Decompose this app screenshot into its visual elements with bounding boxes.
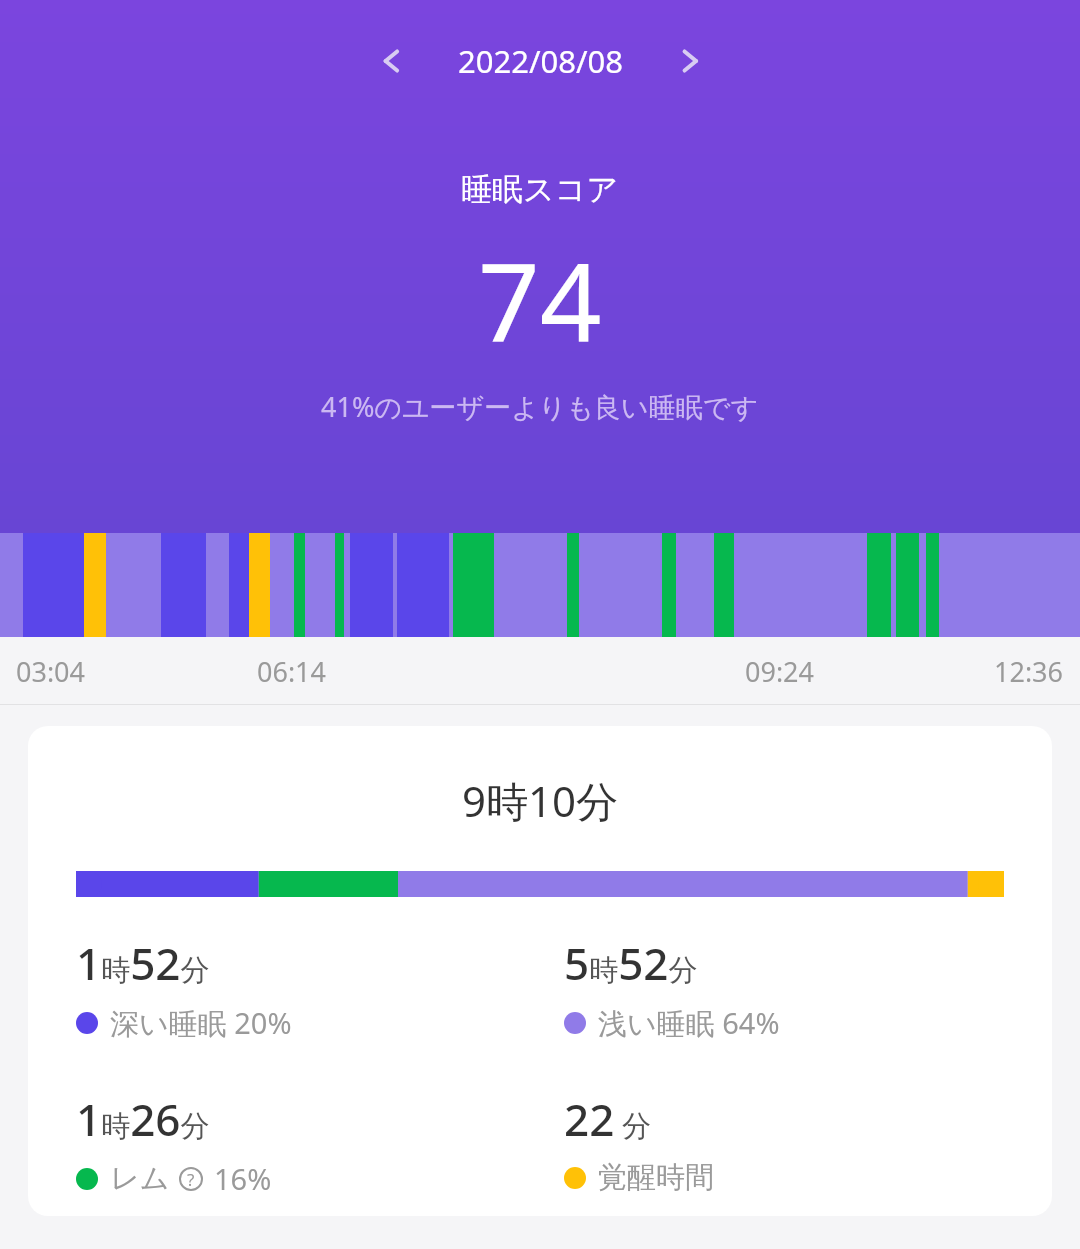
staticText: 覚醒時間 bbox=[598, 1159, 714, 1196]
staticText: 09:24 bbox=[745, 653, 815, 690]
staticText: 深い睡眠 20% bbox=[110, 1003, 292, 1043]
staticText: 睡眠スコア bbox=[461, 170, 619, 209]
staticText: ? bbox=[187, 1168, 195, 1191]
staticText: 1時52分 bbox=[76, 933, 210, 993]
staticText: 22 分 bbox=[564, 1089, 651, 1149]
button[interactable]: 1時26分 bbox=[76, 1089, 540, 1198]
button[interactable]: 5時52分 bbox=[564, 933, 1052, 1043]
button[interactable]: 2022/08/08 bbox=[450, 36, 631, 86]
staticText: 12:36 bbox=[994, 653, 1064, 690]
staticText: 浅い睡眠 64% bbox=[598, 1003, 780, 1043]
button[interactable]: 1時52分 bbox=[76, 933, 540, 1043]
button[interactable]: Next day bbox=[663, 34, 717, 88]
staticText: 5時52分 bbox=[564, 933, 698, 993]
staticText: 06:14 bbox=[257, 653, 327, 690]
button[interactable]: Previous day bbox=[364, 34, 418, 88]
staticText: レム bbox=[110, 1160, 170, 1197]
button[interactable]: 22 分 bbox=[564, 1089, 1052, 1196]
button[interactable]: REM help bbox=[178, 1166, 204, 1192]
staticText: 16% bbox=[214, 1159, 272, 1198]
staticText: 03:04 bbox=[16, 653, 86, 690]
staticText: 9時10分 bbox=[462, 772, 619, 829]
staticText: 2022/08/08 bbox=[458, 40, 623, 82]
staticText: 1時26分 bbox=[76, 1089, 210, 1149]
staticText: 41%のユーザーよりも良い睡眠です bbox=[321, 388, 759, 425]
button[interactable]: 9時10分 bbox=[28, 726, 1052, 1216]
staticText: 74 bbox=[478, 227, 602, 374]
